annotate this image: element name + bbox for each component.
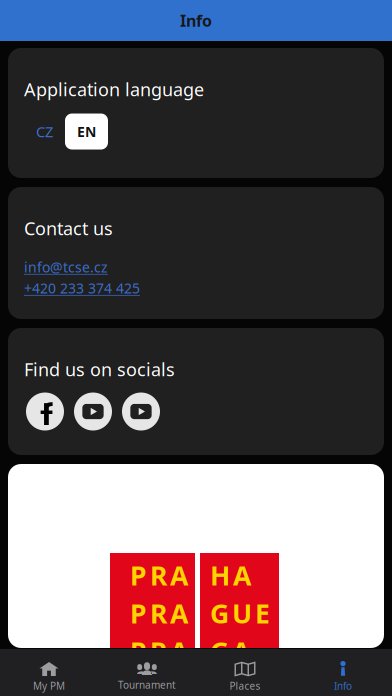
staticText: PRA <box>130 557 188 593</box>
staticText: Info <box>334 679 352 693</box>
button[interactable]: My PM <box>0 649 98 696</box>
staticText: HA <box>210 557 251 593</box>
button[interactable]: EN <box>65 113 108 149</box>
button[interactable]: +420 233 374 425 <box>24 279 140 298</box>
staticText: info@tcse.cz <box>24 257 108 277</box>
staticText: CZ <box>36 121 53 141</box>
staticText: Places <box>229 679 260 693</box>
staticText: Tournament <box>118 678 176 692</box>
staticText: GUE <box>210 595 270 631</box>
staticText: My PM <box>33 679 65 693</box>
button[interactable]: YouTube channel <box>122 392 160 430</box>
button[interactable]: Places <box>196 649 294 696</box>
staticText: Application language <box>24 77 204 101</box>
button[interactable]: info@tcse.cz <box>24 257 108 277</box>
staticText: PRA <box>130 595 188 631</box>
button[interactable]: Info <box>294 649 392 696</box>
staticText: +420 233 374 425 <box>24 279 140 298</box>
button[interactable]: Tournament <box>98 649 196 696</box>
staticText: Find us on socials <box>24 357 175 381</box>
staticText: Info <box>180 10 212 31</box>
button[interactable]: CZ <box>24 113 65 149</box>
staticText: GA <box>210 633 250 669</box>
staticText: Contact us <box>24 216 113 240</box>
staticText: PRA <box>130 633 188 669</box>
button[interactable]: Facebook <box>26 392 64 430</box>
button[interactable]: YouTube <box>74 392 112 430</box>
staticText: EN <box>77 122 96 141</box>
